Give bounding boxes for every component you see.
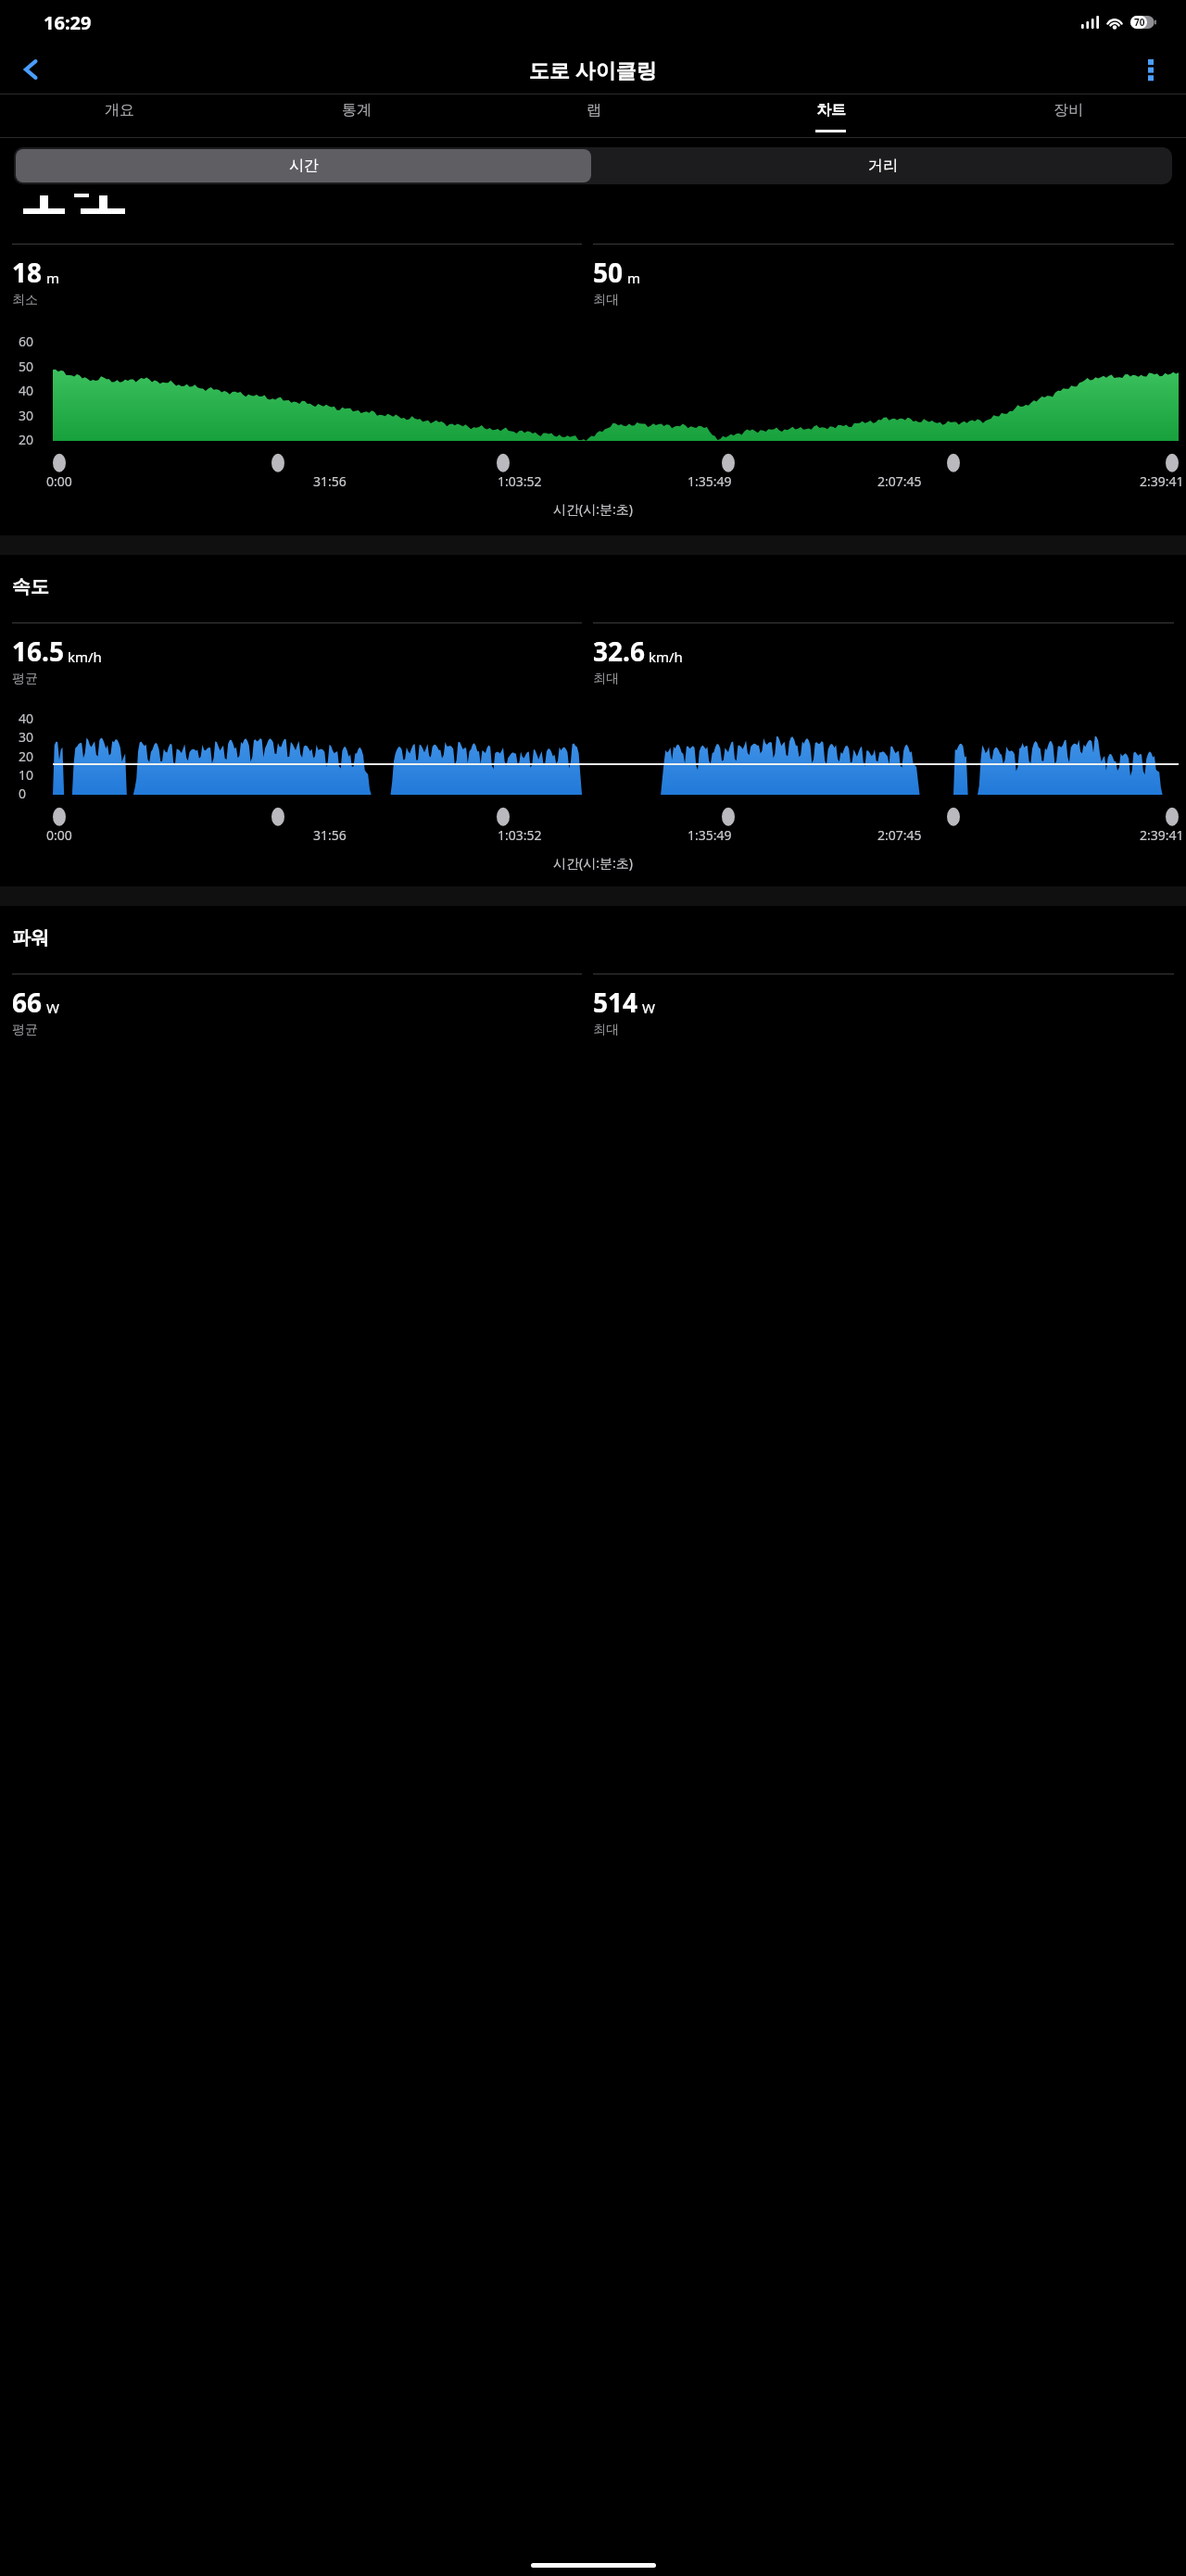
staticText: 40 [19,710,34,727]
staticText: 31:56 [313,472,347,490]
staticText: 1:35:49 [688,826,732,844]
staticText: 66 [12,985,43,1020]
staticText: 40 [19,382,34,399]
staticText: 시간(시:분:초) [553,854,633,872]
staticText: 2:39:41 [1140,826,1184,844]
staticText: 개요 [105,101,134,119]
staticText: 1:03:52 [498,826,542,844]
staticText: 장비 [1054,101,1083,119]
staticText: 도로 사이클링 [529,56,657,83]
staticText: 18 [12,255,43,290]
button[interactable]: 차트 [712,94,949,138]
staticText: km/h [68,647,102,666]
staticText: 속도 [12,575,49,598]
staticText: 차트 [816,101,846,119]
staticText: 31:56 [313,826,347,844]
staticText: 2:07:45 [877,826,922,844]
staticText: 30 [19,407,34,424]
staticText: 16:29 [44,10,92,35]
staticText: 20 [19,748,34,765]
staticText: 32.6 [593,634,645,669]
button[interactable]: 시간 [16,149,591,182]
staticText: m [627,269,641,287]
staticText: 평균 [12,1022,38,1038]
staticText: 거리 [868,157,898,175]
staticText: 0 [19,785,27,802]
staticText: 10 [19,766,34,784]
staticText: 평균 [12,671,38,687]
staticText: 1:03:52 [498,472,542,490]
staticText: 60 [19,333,34,350]
staticText: 시간(시:분:초) [553,500,633,518]
staticText: 50 [19,358,34,375]
staticText: 0:00 [46,826,72,844]
button[interactable]: 통계 [237,94,474,138]
button[interactable]: 장비 [949,94,1186,138]
button[interactable]: 거리 [593,147,1172,184]
staticText: 최대 [593,292,619,308]
staticText: 파워 [12,926,49,949]
staticText: km/h [649,647,683,666]
staticText: W [642,999,655,1017]
staticText: 랩 [587,101,601,119]
staticText: 2:07:45 [877,472,922,490]
staticText: 2:39:41 [1140,472,1184,490]
staticText: 1:35:49 [688,472,732,490]
staticText: 50 [593,255,624,290]
staticText: 30 [19,728,34,746]
staticText: 20 [19,431,34,448]
staticText: 최대 [593,671,619,687]
staticText: 0:00 [46,472,72,490]
staticText: 최대 [593,1022,619,1038]
staticText: m [46,269,60,287]
staticText: 최소 [12,292,38,308]
button[interactable]: 개요 [0,94,237,138]
staticText: 70 [1134,16,1145,29]
staticText: 통계 [342,101,372,119]
staticText: 시간 [289,157,319,175]
button[interactable]: More options [1129,47,1173,92]
staticText: W [46,999,59,1017]
button[interactable]: Back [7,45,56,94]
staticText: 514 [593,985,638,1020]
button[interactable]: 랩 [474,94,712,138]
staticText: 16.5 [12,634,64,669]
